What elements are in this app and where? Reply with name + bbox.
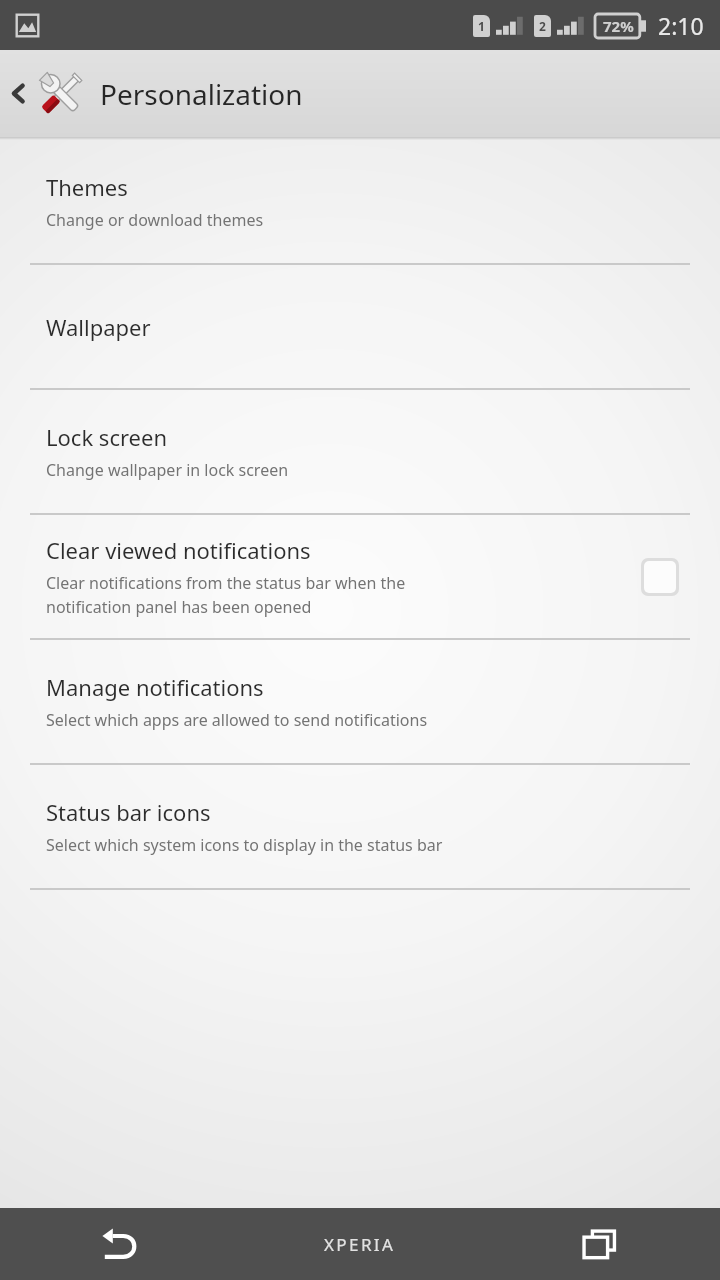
button[interactable]: Back <box>0 1208 240 1280</box>
staticText: Status bar icons <box>46 797 211 827</box>
staticText: Manage notifications <box>46 672 264 702</box>
button[interactable]: Wallpaper <box>0 265 720 388</box>
staticText: Personalization <box>100 75 303 113</box>
staticText: Change wallpaper in lock screen <box>46 459 289 481</box>
staticText: Change or download themes <box>46 209 264 231</box>
staticText: 2:10 <box>658 10 704 41</box>
staticText: Select which system icons to display in … <box>46 834 443 856</box>
button[interactable]: Lock screen <box>0 390 720 513</box>
staticText: 2 <box>539 18 546 34</box>
staticText: 1 <box>478 18 485 34</box>
staticText: XPERIA <box>324 1233 396 1256</box>
staticText: Lock screen <box>46 422 168 452</box>
button[interactable]: XPERIA <box>240 1208 480 1280</box>
button[interactable]: Status bar icons <box>0 765 720 888</box>
staticText: Clear notifications from the status bar … <box>46 572 406 618</box>
button[interactable]: Themes <box>0 140 720 263</box>
button[interactable]: Manage notifications <box>0 640 720 763</box>
button[interactable]: Back <box>0 50 720 137</box>
staticText: Clear viewed notifications <box>46 535 311 565</box>
staticText: Themes <box>46 172 128 202</box>
button[interactable]: Clear viewed notifications <box>0 515 720 638</box>
staticText: 72% <box>603 16 634 36</box>
staticText: Wallpaper <box>46 312 151 342</box>
staticText: Select which apps are allowed to send no… <box>46 709 428 731</box>
button[interactable]: Recent apps <box>480 1208 720 1280</box>
